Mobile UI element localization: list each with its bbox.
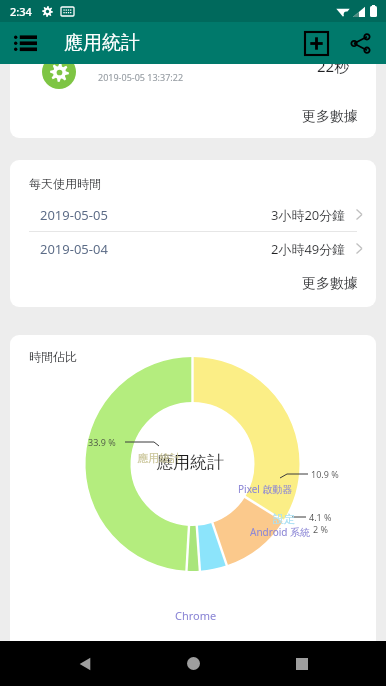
staticText: 10.9 % bbox=[311, 468, 339, 480]
staticText: 時間佔比 bbox=[29, 349, 77, 364]
staticText: 3小時20分鐘 bbox=[271, 206, 346, 224]
staticText: 2小時49分鐘 bbox=[271, 240, 346, 258]
button[interactable]: 更多數據 bbox=[298, 104, 362, 130]
button[interactable]: 2019-05-05 bbox=[10, 198, 376, 231]
button[interactable]: 2019-05-05 13:37:22 bbox=[10, 64, 376, 138]
staticText: 設定 bbox=[273, 512, 295, 526]
staticText: 更多數據 bbox=[302, 108, 358, 126]
staticText: 2019-05-05 13:37:22 bbox=[98, 71, 184, 83]
button[interactable]: Home bbox=[169, 641, 217, 686]
button[interactable]: Add bbox=[296, 23, 336, 63]
button[interactable]: Recents bbox=[278, 641, 326, 686]
staticText: Pixel 啟動器 bbox=[238, 482, 293, 496]
staticText: 應用統計 bbox=[64, 31, 140, 55]
staticText: 更多數據 bbox=[302, 275, 358, 293]
staticText: 2 % bbox=[313, 523, 328, 535]
staticText: Android 系統 bbox=[250, 525, 311, 539]
staticText: 每天使用時間 bbox=[29, 176, 101, 191]
staticText: 4.1 % bbox=[309, 511, 332, 523]
button[interactable]: Menu bbox=[4, 22, 46, 64]
staticText: Chrome bbox=[175, 608, 217, 623]
button[interactable]: Share bbox=[340, 23, 380, 63]
staticText: 應用統計 bbox=[156, 452, 224, 473]
staticText: 應用統計 bbox=[137, 451, 181, 465]
staticText: 2019-05-05 bbox=[40, 206, 108, 224]
button[interactable]: 更多數據 bbox=[298, 271, 362, 297]
staticText: 2:34 bbox=[10, 4, 32, 19]
staticText: 33.9 % bbox=[88, 436, 116, 448]
staticText: 22秒 bbox=[317, 64, 350, 76]
button[interactable]: 2019-05-04 bbox=[10, 232, 376, 265]
staticText: 2019-05-04 bbox=[40, 240, 108, 258]
button[interactable]: Back bbox=[61, 641, 109, 686]
